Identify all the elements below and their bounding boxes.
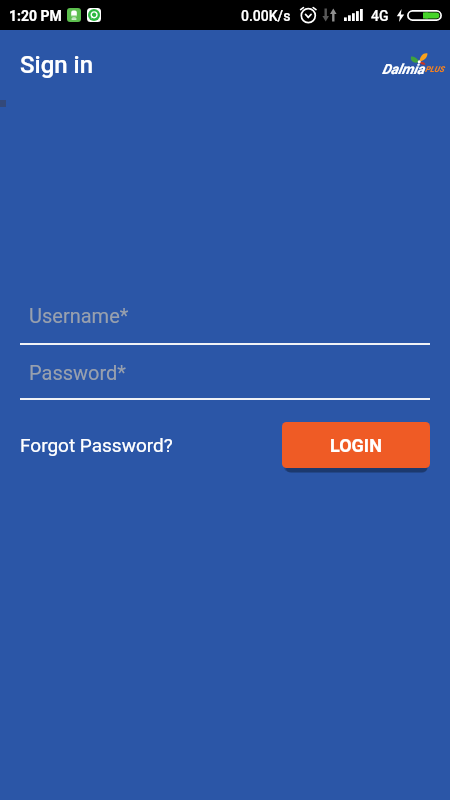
staticText: Username* [29, 304, 129, 327]
button[interactable]: LOGIN [282, 422, 430, 468]
staticText: Dalmia [382, 61, 425, 77]
staticText: Sign in [20, 51, 94, 79]
staticText: PLUS [425, 65, 444, 74]
staticText: 1:20 PM [9, 8, 62, 24]
staticText: LOGIN [330, 435, 382, 456]
staticText: 4G [371, 8, 389, 24]
staticText: Password* [29, 361, 126, 384]
staticText: 0.00K/s [241, 8, 291, 24]
staticText: Forgot Password? [20, 434, 173, 456]
button[interactable]: Forgot Password? [20, 434, 173, 456]
